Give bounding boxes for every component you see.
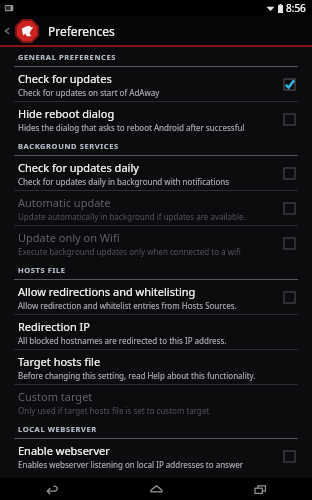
staticText: Target hosts file — [18, 354, 101, 369]
staticText: Enable webserver — [18, 443, 110, 458]
staticText: LOCAL WEBSERVER — [18, 424, 97, 434]
staticText: Update automatically in background if up… — [18, 211, 246, 222]
staticText: BACKGROUND SERVICES — [18, 141, 119, 151]
staticText: Update only on Wifi — [18, 230, 120, 245]
button[interactable]: Enable webserver — [0, 439, 312, 473]
staticText: Check for updates daily in background wi… — [18, 176, 230, 187]
staticText: Hides the dialog that asks to reboot And… — [18, 122, 276, 133]
button[interactable]: Check for updates daily — [0, 156, 312, 190]
button[interactable]: Target hosts file — [0, 350, 312, 384]
staticText: GENERAL PREFERENCES — [18, 52, 117, 62]
staticText: Redirection IP — [18, 319, 90, 334]
button[interactable]: Hide reboot dialog — [0, 102, 312, 136]
staticText: 8:56 — [286, 1, 306, 15]
staticText: Allow redirection and whitelist entries … — [18, 300, 237, 311]
button[interactable]: Automatic update — [0, 191, 312, 225]
button[interactable]: Back — [0, 478, 104, 500]
button[interactable]: Home — [104, 478, 208, 500]
staticText: Preferences — [48, 23, 115, 39]
button[interactable]: Check for updates — [0, 67, 312, 101]
staticText: Check for updates daily — [18, 160, 139, 175]
staticText: Allow redirections and whitelisting — [18, 284, 196, 299]
staticText: Enables webserver listening on local IP … — [18, 459, 276, 470]
button[interactable]: Redirection IP — [0, 315, 312, 349]
button[interactable]: Recent apps — [208, 478, 312, 500]
staticText: Check for updates on start of AdAway — [18, 87, 160, 98]
button[interactable]: Allow redirections and whitelisting — [0, 280, 312, 314]
staticText: Only used if target hosts file is set to… — [18, 405, 210, 416]
button[interactable]: Update only on Wifi — [0, 226, 312, 260]
staticText: All blocked hostnames are redirected to … — [18, 335, 227, 346]
staticText: Automatic update — [18, 195, 111, 210]
button[interactable]: Custom target — [0, 385, 312, 419]
staticText: HOSTS FILE — [18, 265, 66, 275]
staticText: Before changing this setting, read Help … — [18, 370, 256, 381]
staticText: Hide reboot dialog — [18, 106, 115, 121]
staticText: Custom target — [18, 389, 93, 404]
button[interactable]: Navigate up — [0, 16, 14, 45]
staticText: Check for updates — [18, 71, 112, 86]
staticText: Execute background updates only when con… — [18, 246, 276, 257]
